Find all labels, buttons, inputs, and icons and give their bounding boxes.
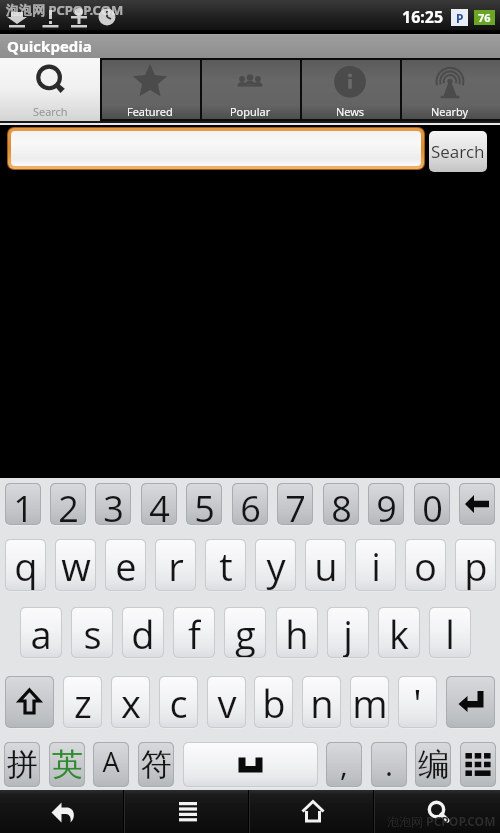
staticText: j bbox=[343, 608, 353, 657]
staticText: Popular bbox=[230, 104, 271, 119]
button[interactable]: e bbox=[106, 540, 145, 590]
button[interactable] bbox=[447, 677, 494, 727]
staticText: s bbox=[83, 608, 102, 657]
staticText: News bbox=[336, 104, 365, 119]
button[interactable]: 2 bbox=[51, 484, 85, 524]
button[interactable]: 0 bbox=[415, 484, 449, 524]
button[interactable]: Popular bbox=[200, 58, 300, 121]
button[interactable]: f bbox=[174, 608, 214, 657]
staticText: h bbox=[285, 608, 309, 657]
button[interactable]: 符 bbox=[139, 743, 173, 786]
button[interactable]: x bbox=[112, 677, 149, 727]
button[interactable]: 3 bbox=[96, 484, 130, 524]
button[interactable]: w bbox=[56, 540, 95, 590]
staticText: r bbox=[168, 540, 184, 590]
button[interactable]: 6 bbox=[233, 484, 267, 524]
button[interactable]: a bbox=[21, 608, 61, 657]
staticText: 0 bbox=[422, 484, 443, 524]
button[interactable]: t bbox=[206, 540, 245, 590]
button[interactable]: z bbox=[64, 677, 101, 727]
button[interactable]: i bbox=[356, 540, 395, 590]
button[interactable]: Menu bbox=[125, 790, 250, 833]
staticText: i bbox=[371, 540, 381, 590]
button[interactable]: q bbox=[6, 540, 45, 590]
staticText: w bbox=[61, 540, 91, 590]
button[interactable]: g bbox=[225, 608, 265, 657]
button[interactable]: h bbox=[277, 608, 317, 657]
button[interactable]: r bbox=[156, 540, 195, 590]
staticText: c bbox=[169, 677, 188, 727]
staticText: f bbox=[188, 608, 201, 657]
staticText: o bbox=[414, 540, 437, 590]
button[interactable]: v bbox=[208, 677, 245, 727]
button[interactable]: Search bbox=[429, 131, 487, 172]
button[interactable]: o bbox=[406, 540, 445, 590]
staticText: 符 bbox=[141, 745, 172, 784]
staticText: x bbox=[121, 677, 141, 727]
staticText: Featured bbox=[127, 104, 173, 119]
staticText: 16:25 bbox=[402, 6, 444, 28]
button[interactable]: . bbox=[372, 743, 406, 786]
button[interactable]: Home bbox=[250, 790, 375, 833]
button[interactable]: 7 bbox=[278, 484, 312, 524]
button[interactable]: d bbox=[123, 608, 163, 657]
button[interactable]: 4 bbox=[142, 484, 176, 524]
staticText: y bbox=[266, 540, 286, 590]
button[interactable]: News bbox=[300, 58, 400, 121]
staticText: Quickpedia bbox=[7, 36, 92, 56]
button[interactable]: u bbox=[306, 540, 345, 590]
button[interactable]: 1 bbox=[6, 484, 40, 524]
staticText: 8 bbox=[331, 484, 352, 524]
staticText: 9 bbox=[376, 484, 397, 524]
button[interactable]: Search bbox=[375, 790, 500, 833]
button[interactable]: k bbox=[379, 608, 419, 657]
button[interactable]: c bbox=[160, 677, 197, 727]
button[interactable]: 9 bbox=[369, 484, 403, 524]
staticText: n bbox=[310, 677, 334, 727]
staticText: p bbox=[464, 540, 488, 590]
button[interactable]: AB bbox=[94, 743, 128, 786]
button[interactable] bbox=[461, 743, 495, 786]
button[interactable]: 编 bbox=[416, 743, 450, 786]
staticText: 泡泡网 PCPOP.COM bbox=[387, 813, 496, 829]
button[interactable]: 拼 bbox=[5, 743, 39, 786]
staticText: d bbox=[131, 608, 155, 657]
staticText: k bbox=[389, 608, 409, 657]
button[interactable]: p bbox=[456, 540, 495, 590]
button[interactable]: 英 bbox=[50, 743, 84, 786]
staticText: l bbox=[445, 608, 455, 657]
staticText: m bbox=[352, 677, 388, 727]
staticText: Search bbox=[33, 104, 68, 119]
button[interactable]: l bbox=[430, 608, 470, 657]
button[interactable]: 8 bbox=[324, 484, 358, 524]
button[interactable]: s bbox=[72, 608, 112, 657]
button[interactable]: 5 bbox=[187, 484, 221, 524]
staticText: . bbox=[385, 744, 393, 785]
button[interactable]: n bbox=[303, 677, 340, 727]
button[interactable]: m bbox=[351, 677, 388, 727]
staticText: 3 bbox=[103, 484, 124, 524]
staticText: P bbox=[456, 10, 464, 26]
button[interactable]: b bbox=[255, 677, 292, 727]
button[interactable]: Nearby bbox=[400, 58, 500, 121]
staticText: u bbox=[314, 540, 338, 590]
staticText: 拼 bbox=[7, 745, 38, 784]
button[interactable]: y bbox=[256, 540, 295, 590]
staticText: AB bbox=[94, 743, 128, 786]
button[interactable]: j bbox=[328, 608, 368, 657]
staticText: Nearby bbox=[431, 104, 469, 119]
staticText: 1 bbox=[13, 484, 34, 524]
button[interactable] bbox=[184, 743, 317, 786]
button[interactable]: Search bbox=[0, 58, 100, 121]
staticText: 英 bbox=[52, 745, 83, 784]
button[interactable]: ' bbox=[399, 677, 436, 727]
button[interactable]: Featured bbox=[100, 58, 200, 121]
staticText: ' bbox=[413, 677, 422, 727]
button[interactable] bbox=[460, 484, 494, 524]
staticText: g bbox=[235, 608, 256, 657]
button[interactable] bbox=[6, 677, 53, 727]
button[interactable]: , bbox=[327, 743, 361, 786]
staticText: Search bbox=[431, 140, 485, 163]
button[interactable] bbox=[11, 131, 421, 166]
button[interactable]: Back bbox=[0, 790, 125, 833]
